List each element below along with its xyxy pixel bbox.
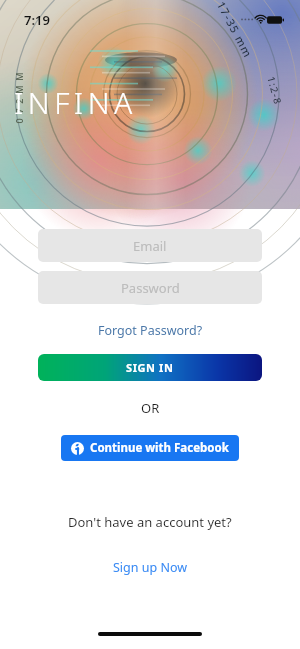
staticText: SIGN IN xyxy=(126,360,174,375)
button[interactable]: Password xyxy=(38,271,262,304)
staticText: INFINA xyxy=(14,82,137,123)
button[interactable]: Forgot Password? xyxy=(92,320,209,341)
button[interactable]: Sign up Now xyxy=(107,557,194,578)
button[interactable]: Continue with Facebook xyxy=(61,435,239,461)
staticText: Password xyxy=(121,279,180,297)
other: Status icons xyxy=(240,14,284,26)
staticText: 1:2-8 xyxy=(264,75,286,107)
button[interactable]: SIGN IN xyxy=(38,354,262,381)
staticText: Continue with Facebook xyxy=(90,440,229,456)
staticText: 0 7 2 M M xyxy=(12,70,24,123)
staticText: Don't have an account yet? xyxy=(68,513,232,531)
staticText: Forgot Password? xyxy=(98,322,203,339)
button[interactable]: Email xyxy=(38,229,262,262)
staticText: Sign up Now xyxy=(113,559,188,576)
staticText: 7:19 xyxy=(24,11,50,29)
staticText: OR xyxy=(141,399,160,417)
staticText: 17-35 mm xyxy=(214,0,256,60)
staticText: Email xyxy=(133,237,167,255)
